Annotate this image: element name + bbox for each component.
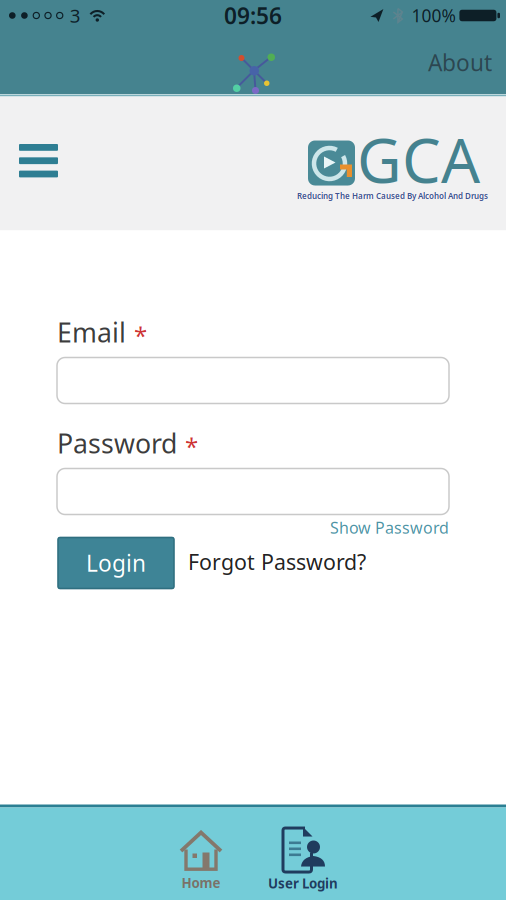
staticText: *: [185, 430, 198, 462]
staticText: About: [428, 47, 492, 77]
staticText: Password: [57, 425, 177, 461]
staticText: *: [134, 319, 147, 351]
button[interactable]: Login: [58, 537, 174, 588]
button[interactable]: About: [418, 47, 506, 77]
button[interactable]: Home: [179, 830, 222, 892]
staticText: User Login: [268, 874, 338, 892]
staticText: Login: [86, 548, 146, 578]
button[interactable]: Menu: [11, 136, 66, 185]
staticText: Reducing The Harm Caused By Alcohol And …: [297, 190, 488, 201]
staticText: Show Password: [330, 517, 449, 538]
button[interactable]: Show Password: [330, 517, 449, 538]
staticText: 3: [70, 3, 81, 28]
staticText: Email: [57, 314, 126, 350]
staticText: Home: [181, 874, 220, 892]
button[interactable]: User Login: [268, 826, 338, 892]
staticText: 100%: [411, 4, 455, 27]
staticText: GCA: [357, 118, 480, 200]
staticText: 09:56: [224, 0, 282, 30]
staticText: Forgot Password?: [188, 547, 366, 576]
button[interactable]: Forgot Password?: [188, 547, 366, 576]
